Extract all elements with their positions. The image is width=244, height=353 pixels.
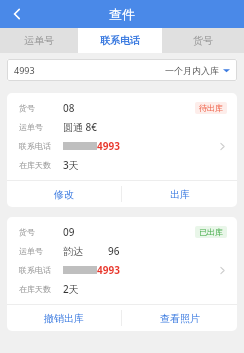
staticText: 4993 [97, 139, 120, 153]
staticText: 已出库 [199, 227, 223, 237]
staticText: 出库 [170, 188, 190, 201]
staticText: 3天 [63, 158, 79, 172]
staticText: 待出库 [199, 103, 223, 113]
staticText: 运单号 [24, 34, 54, 47]
staticText: 08 [63, 101, 75, 115]
staticText: 运单号 [19, 122, 43, 132]
button[interactable]: 一个月内入库 [165, 65, 230, 76]
staticText: 货号 [19, 103, 35, 113]
button[interactable]: 货号 [7, 93, 237, 180]
staticText: 修改 [54, 188, 74, 201]
staticText: 查看照片 [160, 312, 200, 325]
staticText: 联系电话 [19, 141, 51, 151]
button[interactable]: Back [0, 0, 34, 28]
staticText: 货号 [19, 227, 35, 237]
button[interactable]: 修改 [7, 181, 121, 207]
staticText: 撤销出库 [44, 312, 84, 325]
staticText: 在库天数 [19, 284, 51, 294]
staticText: 一个月内入库 [165, 65, 219, 76]
button[interactable]: 联系电话 [78, 28, 162, 53]
staticText: 4993 [97, 263, 120, 277]
staticText: 96 [108, 244, 120, 258]
button[interactable]: 4993 [14, 64, 165, 76]
staticText: 运单号 [19, 246, 43, 256]
button[interactable]: 运单号 [0, 28, 78, 53]
button[interactable]: 货号 [162, 28, 244, 53]
staticText: 韵达 [63, 244, 86, 258]
staticText: 在库天数 [19, 160, 51, 170]
staticText: 圆通 8€ [63, 120, 98, 134]
staticText: 联系电话 [100, 34, 140, 47]
button[interactable]: 出库 [122, 181, 237, 207]
staticText: 联系电话 [19, 265, 51, 275]
staticText: 2天 [63, 282, 79, 296]
staticText: 查件 [109, 6, 135, 22]
button[interactable]: 撤销出库 [7, 305, 121, 331]
button[interactable]: 查看照片 [122, 305, 237, 331]
staticText: 货号 [193, 34, 213, 47]
staticText: 09 [63, 225, 75, 239]
button[interactable]: 货号 [7, 217, 237, 304]
